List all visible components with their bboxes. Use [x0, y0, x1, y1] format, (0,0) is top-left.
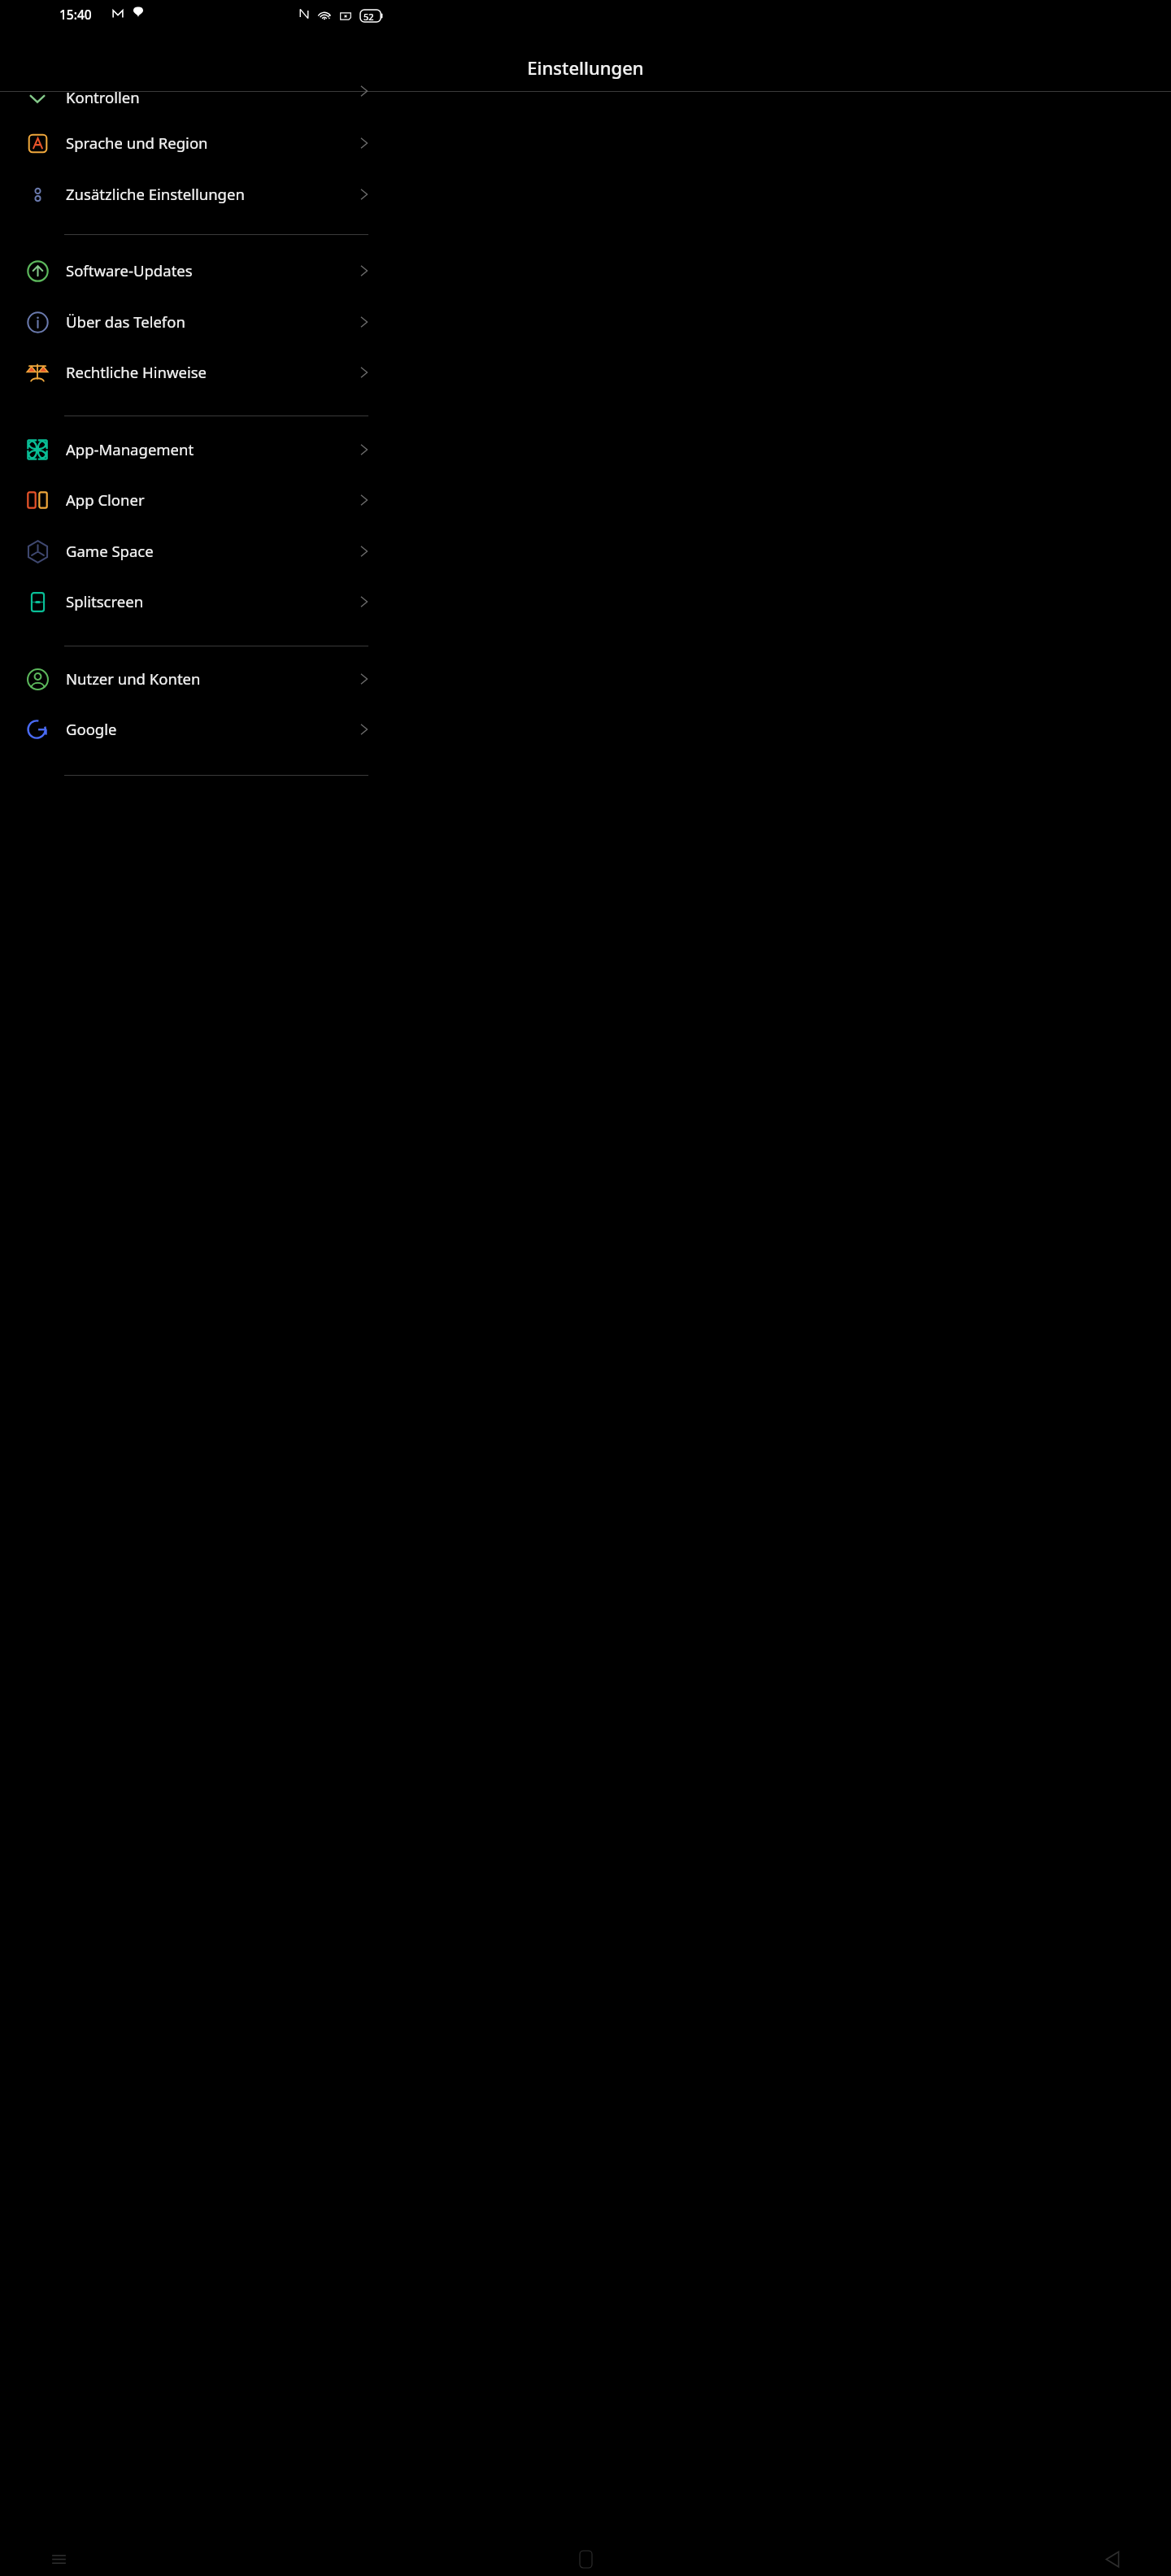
staticText: Über das Telefon — [66, 311, 185, 332]
button[interactable]: Back — [1095, 2542, 1130, 2576]
staticText: 15:40 — [59, 6, 92, 23]
button[interactable]: Software-Updates — [0, 245, 1171, 296]
staticText: Google — [66, 719, 117, 739]
staticText: App Cloner — [66, 490, 145, 510]
button[interactable]: App Cloner — [0, 474, 1171, 525]
staticText: Game Space — [66, 541, 154, 561]
staticText: Einstellungen — [527, 55, 644, 80]
button[interactable]: Home — [568, 2542, 603, 2576]
staticText: App-Management — [66, 439, 194, 459]
staticText: Splitscreen — [66, 591, 144, 611]
button[interactable]: Game Space — [0, 525, 1171, 577]
button[interactable]: Recent apps — [41, 2542, 76, 2576]
staticText: Sprache und Region — [66, 133, 208, 153]
button[interactable]: Nutzer und Konten — [0, 653, 1171, 704]
staticText: Software-Updates — [66, 260, 193, 281]
staticText: Zusätzliche Einstellungen — [66, 184, 245, 204]
button[interactable]: Kontrollen — [0, 91, 1171, 115]
staticText: Rechtliche Hinweise — [66, 362, 207, 382]
button[interactable]: Sprache und Region — [0, 117, 1171, 168]
staticText: Kontrollen — [66, 87, 140, 107]
button[interactable]: Google — [0, 703, 1171, 755]
button[interactable]: Splitscreen — [0, 576, 1171, 627]
button[interactable]: Zusätzliche Einstellungen — [0, 168, 1171, 220]
staticText: 52 — [363, 11, 374, 23]
button[interactable]: Rechtliche Hinweise — [0, 346, 1171, 398]
button[interactable]: App-Management — [0, 424, 1171, 475]
staticText: Nutzer und Konten — [66, 668, 201, 689]
button[interactable]: Über das Telefon — [0, 296, 1171, 347]
